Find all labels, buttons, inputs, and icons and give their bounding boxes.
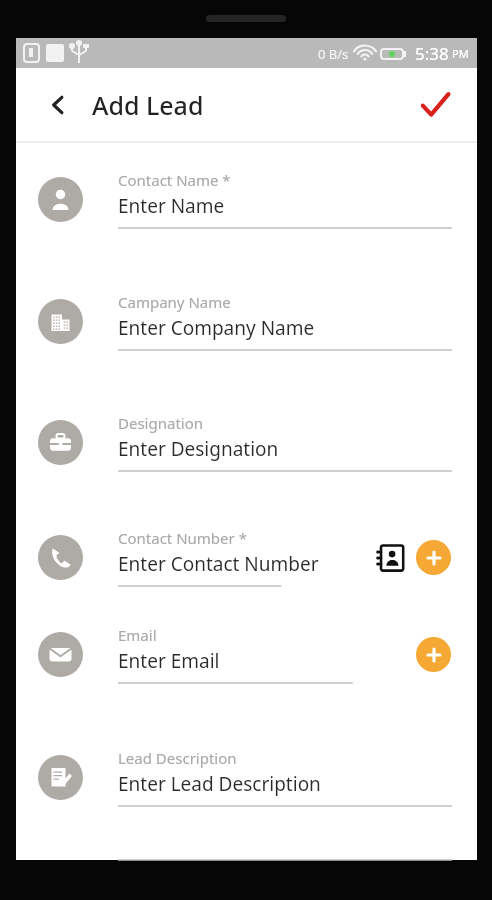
button[interactable]: Campany Name [16,283,477,360]
staticText: PM [452,46,469,61]
button[interactable]: Pick from contacts [370,538,410,578]
staticText: Campany Name [118,292,231,312]
staticText: 0 B/s [318,45,349,63]
button[interactable]: Contact Number * [16,519,477,596]
button[interactable]: Add another [416,540,451,575]
staticText: Enter Contact Number [118,551,319,577]
staticText: Enter Designation [118,436,279,462]
button[interactable]: Back [36,83,80,127]
staticText: Enter Email [118,648,220,674]
staticText: Enter Company Name [118,315,315,341]
button[interactable]: Designation [16,404,477,481]
button[interactable]: Contact Name * [16,161,477,238]
staticText: 5:38 [415,42,449,65]
staticText: Enter Name [118,193,225,219]
staticText: Lead Description [118,748,237,768]
staticText: Email [118,625,157,645]
staticText: Enter Lead Description [118,771,321,797]
button[interactable]: Add another [416,637,451,672]
staticText: Contact Name * [118,170,231,190]
staticText: Add Lead [92,88,204,122]
staticText: Contact Number * [118,528,247,548]
staticText: Designation [118,413,204,433]
button[interactable]: Save [411,81,459,129]
button[interactable]: Lead Description [16,739,477,816]
button[interactable]: Email [16,616,477,693]
